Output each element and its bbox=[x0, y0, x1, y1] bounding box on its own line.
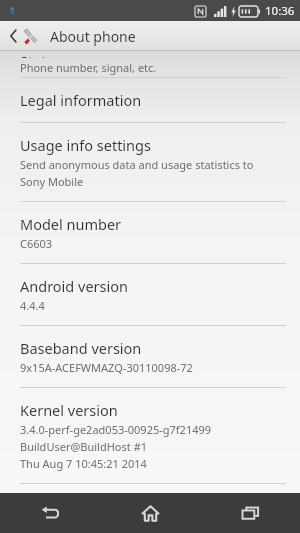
button[interactable]: Kernel version bbox=[0, 388, 300, 483]
staticText: Model number bbox=[20, 214, 122, 234]
staticText: Status bbox=[20, 51, 63, 58]
staticText: Usage info settings bbox=[20, 135, 151, 155]
staticText: BuildUser@BuildHost #1 bbox=[20, 439, 148, 454]
button[interactable]: Android version bbox=[0, 264, 300, 325]
staticText: 9x15A-ACEFWMAZQ-30110098-72 bbox=[20, 360, 193, 375]
button[interactable]: Usage info settings bbox=[0, 123, 300, 201]
staticText: Kernel version bbox=[20, 400, 118, 420]
button[interactable]: Status bbox=[0, 51, 300, 77]
button[interactable]: Baseband version bbox=[0, 326, 300, 387]
staticText: C6603 bbox=[20, 236, 53, 251]
staticText: Thu Aug 7 10:45:21 2014 bbox=[20, 456, 147, 471]
staticText: 10:36 bbox=[265, 3, 295, 19]
button[interactable]: Back bbox=[0, 493, 100, 533]
button[interactable]: Recents bbox=[200, 493, 300, 533]
button[interactable]: Back bbox=[0, 21, 300, 51]
staticText: About phone bbox=[50, 27, 136, 46]
staticText: Android version bbox=[20, 276, 128, 296]
staticText: Send anonymous data and usage statistics… bbox=[20, 157, 254, 172]
button[interactable]: Back bbox=[6, 23, 20, 49]
button[interactable]: Home bbox=[100, 493, 200, 533]
staticText: Sony Mobile bbox=[20, 174, 84, 189]
staticText: 3.4.0-perf-ge2ad053-00925-g7f21499 bbox=[20, 422, 212, 437]
button[interactable]: Model number bbox=[0, 202, 300, 263]
staticText: Legal information bbox=[20, 90, 142, 110]
staticText: Baseband version bbox=[20, 338, 142, 358]
staticText: 4.4.4 bbox=[20, 298, 45, 313]
button[interactable]: Legal information bbox=[0, 78, 300, 122]
staticText: Phone number, signal, etc. bbox=[20, 60, 157, 75]
